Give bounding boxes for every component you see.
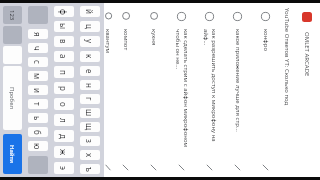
- button[interactable]: Пробел: [3, 66, 22, 130]
- staticText: OMLET ARCADE: [303, 32, 311, 77]
- staticText: YouTube Ответов YT: Сколько под: [283, 8, 291, 106]
- button[interactable]: ю: [28, 141, 48, 151]
- staticText: Найти: [8, 145, 16, 164]
- button[interactable]: какое приложение лучше для стр...: [224, 3, 252, 177]
- staticText: как разрешить доступ к микрофону на айф.…: [202, 29, 218, 159]
- staticText: квантум: [104, 29, 112, 159]
- staticText: й: [84, 9, 95, 14]
- button[interactable]: ч: [28, 43, 48, 53]
- staticText: с: [32, 60, 43, 64]
- button[interactable]: ы: [54, 21, 74, 32]
- button[interactable]: з: [80, 136, 100, 146]
- staticText: ф: [58, 9, 69, 15]
- button[interactable]: х: [80, 150, 100, 160]
- button[interactable]: кухня: [140, 3, 168, 177]
- staticText: р: [58, 86, 69, 91]
- staticText: ю: [32, 143, 43, 150]
- staticText: конфро: [262, 29, 270, 159]
- staticText: ц: [84, 24, 95, 29]
- staticText: какое приложение лучше для стр...: [234, 29, 242, 159]
- button[interactable]: квантум: [104, 3, 112, 177]
- button[interactable]: щ: [80, 122, 100, 132]
- button[interactable]: Voice input: [3, 46, 22, 64]
- staticText: л: [58, 118, 69, 123]
- staticText: как сделать стрим с айфон микрофоном что…: [174, 29, 190, 159]
- button[interactable]: я: [28, 29, 48, 39]
- staticText: а: [58, 54, 69, 59]
- staticText: ж: [58, 149, 69, 156]
- staticText: х: [84, 153, 95, 158]
- staticText: кухня: [150, 29, 158, 159]
- button[interactable]: Найти: [3, 134, 22, 174]
- button[interactable]: л: [54, 114, 74, 126]
- staticText: о: [58, 102, 69, 107]
- staticText: э: [58, 166, 69, 170]
- staticText: н: [84, 83, 95, 88]
- staticText: п: [58, 70, 69, 75]
- button[interactable]: о: [54, 98, 74, 110]
- button[interactable]: компот: [112, 3, 140, 177]
- button[interactable]: в: [54, 36, 74, 47]
- staticText: ь: [32, 116, 43, 121]
- button[interactable]: 123: [3, 6, 22, 24]
- staticText: я: [32, 32, 43, 37]
- staticText: ы: [58, 23, 69, 30]
- staticText: д: [58, 134, 69, 139]
- staticText: е: [84, 69, 95, 74]
- button[interactable]: р: [54, 82, 74, 94]
- staticText: ъ: [84, 167, 95, 172]
- button[interactable]: OMLET ARCADE: [294, 3, 320, 177]
- button[interactable]: конфро: [252, 3, 280, 177]
- staticText: г: [84, 97, 95, 101]
- button[interactable]: э: [54, 162, 74, 174]
- staticText: 123: [8, 10, 16, 21]
- button[interactable]: ъ: [80, 164, 100, 174]
- staticText: у: [84, 39, 95, 44]
- staticText: т: [32, 102, 43, 106]
- staticText: щ: [84, 123, 95, 131]
- staticText: к: [84, 54, 95, 59]
- button[interactable]: б: [28, 127, 48, 137]
- button[interactable]: т: [28, 99, 48, 109]
- button[interactable]: YouTube Ответов YT: Сколько под: [280, 3, 294, 177]
- staticText: з: [84, 139, 95, 143]
- button[interactable]: ж: [54, 146, 74, 158]
- button[interactable]: с: [28, 57, 48, 67]
- button[interactable]: г: [80, 94, 100, 104]
- button[interactable]: ф: [54, 6, 74, 17]
- button[interactable]: к: [80, 51, 100, 62]
- button[interactable]: и: [28, 85, 48, 95]
- staticText: ш: [84, 109, 95, 117]
- button[interactable]: д: [54, 130, 74, 142]
- button[interactable]: е: [80, 66, 100, 76]
- staticText: м: [32, 73, 43, 80]
- staticText: Пробел: [8, 87, 16, 110]
- button[interactable]: н: [80, 80, 100, 90]
- staticText: ч: [32, 46, 43, 51]
- button[interactable]: ц: [80, 21, 100, 32]
- button[interactable]: ш: [80, 108, 100, 118]
- button[interactable]: м: [28, 71, 48, 81]
- button[interactable]: а: [54, 51, 74, 62]
- staticText: компот: [122, 29, 130, 159]
- button[interactable]: п: [54, 66, 74, 78]
- button[interactable]: у: [80, 36, 100, 47]
- button[interactable]: ь: [28, 113, 48, 123]
- button[interactable]: как сделать стрим с айфон микрофоном что…: [168, 3, 196, 177]
- button[interactable]: й: [80, 6, 100, 17]
- staticText: б: [32, 130, 43, 135]
- button[interactable]: как разрешить доступ к микрофону на айф.…: [196, 3, 224, 177]
- staticText: в: [58, 39, 69, 44]
- staticText: и: [32, 88, 43, 93]
